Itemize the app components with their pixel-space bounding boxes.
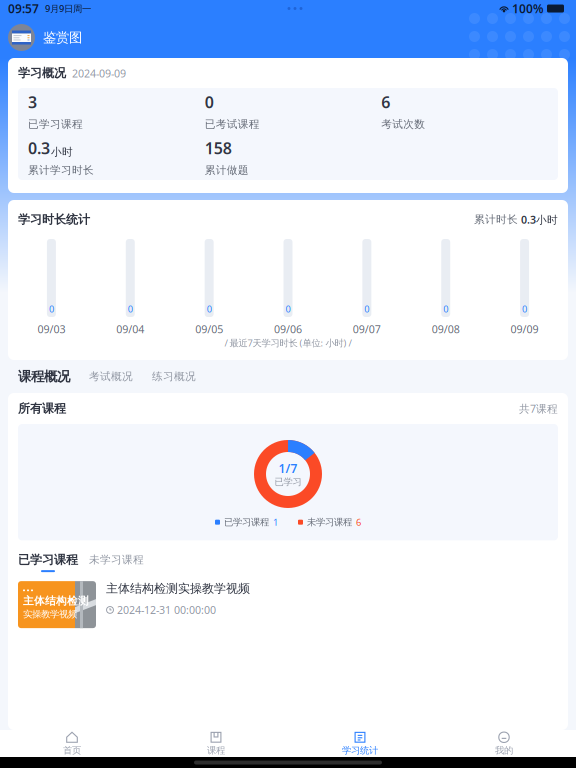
staticText: 学习概况 <box>18 66 66 80</box>
button[interactable]: 学习统计 <box>288 730 432 757</box>
staticText: 课程 <box>207 745 225 756</box>
staticText: 已学习课程 <box>18 552 78 567</box>
staticText: 小时 <box>51 145 73 159</box>
button[interactable]: 首页 <box>0 730 144 757</box>
staticText: 1 <box>273 516 278 528</box>
staticText: 09/06 <box>274 322 302 336</box>
staticText: 09/04 <box>116 322 144 336</box>
staticText: 0 <box>522 303 527 315</box>
staticText: 2024-12-31 00:00:00 <box>117 603 216 617</box>
staticText: 0 <box>443 303 448 315</box>
staticText: 所有课程 <box>18 401 66 416</box>
button[interactable]: 未学习课程 <box>89 553 144 571</box>
staticText: 鉴赏图 <box>43 29 82 46</box>
staticText: 158 <box>205 137 232 158</box>
button[interactable]: 已学习课程 <box>18 552 78 572</box>
staticText: 累计做题 <box>205 164 249 177</box>
staticText: 0 <box>205 91 214 112</box>
staticText: 0 <box>285 303 290 315</box>
staticText: 主体结构检测实操教学视频 <box>106 581 250 596</box>
button[interactable]: 我的 <box>432 730 576 757</box>
staticText: 09:57 <box>8 0 39 16</box>
staticText: 累计学习时长 <box>28 164 94 177</box>
staticText: 已学习 <box>274 476 301 488</box>
staticText: 3 <box>28 91 37 112</box>
staticText: 09/08 <box>432 322 460 336</box>
staticText: 已学习课程 <box>224 516 269 528</box>
staticText: 09/03 <box>37 322 65 336</box>
staticText: 09/09 <box>511 322 539 336</box>
staticText: / 最近7天学习时长 (单位: 小时) / <box>224 337 351 349</box>
staticText: 考试次数 <box>381 118 425 131</box>
staticText: 0 <box>49 303 54 315</box>
button[interactable]: 主体结构检测 <box>8 572 568 628</box>
staticText: 9月9日周一 <box>45 2 91 15</box>
staticText: 练习概况 <box>152 370 196 383</box>
staticText: 实操教学视频 <box>23 608 77 620</box>
staticText: 0 <box>207 303 212 315</box>
staticText: 0.3小时 <box>521 212 558 227</box>
staticText: 课程概况 <box>18 368 70 385</box>
staticText: 6 <box>356 516 361 528</box>
staticText: 0 <box>364 303 369 315</box>
staticText: 共7课程 <box>519 401 558 416</box>
staticText: 未学习课程 <box>89 553 144 566</box>
staticText: 累计时长 <box>474 213 518 226</box>
staticText: 学习时长统计 <box>18 212 90 227</box>
staticText: 100% <box>512 0 544 16</box>
staticText: 我的 <box>495 745 513 756</box>
staticText: 学习统计 <box>342 745 378 756</box>
button[interactable]: 课程 <box>144 730 288 757</box>
staticText: 09/07 <box>353 322 381 336</box>
button[interactable]: 课程概况 <box>12 360 76 393</box>
staticText: 6 <box>381 91 390 112</box>
staticText: 0.3 <box>28 137 50 158</box>
staticText: 首页 <box>63 745 81 756</box>
staticText: 09/05 <box>195 322 223 336</box>
staticText: 考试概况 <box>89 370 133 383</box>
staticText: 未学习课程 <box>307 516 352 528</box>
staticText: 主体结构检测 <box>23 594 89 607</box>
staticText: 已考试课程 <box>205 118 260 131</box>
button[interactable]: 考试概况 <box>76 360 146 393</box>
staticText: 2024-09-09 <box>72 66 126 80</box>
staticText: 1/7 <box>278 460 297 476</box>
staticText: 已学习课程 <box>28 118 83 131</box>
staticText: 0 <box>128 303 133 315</box>
button[interactable]: 练习概况 <box>146 360 202 393</box>
